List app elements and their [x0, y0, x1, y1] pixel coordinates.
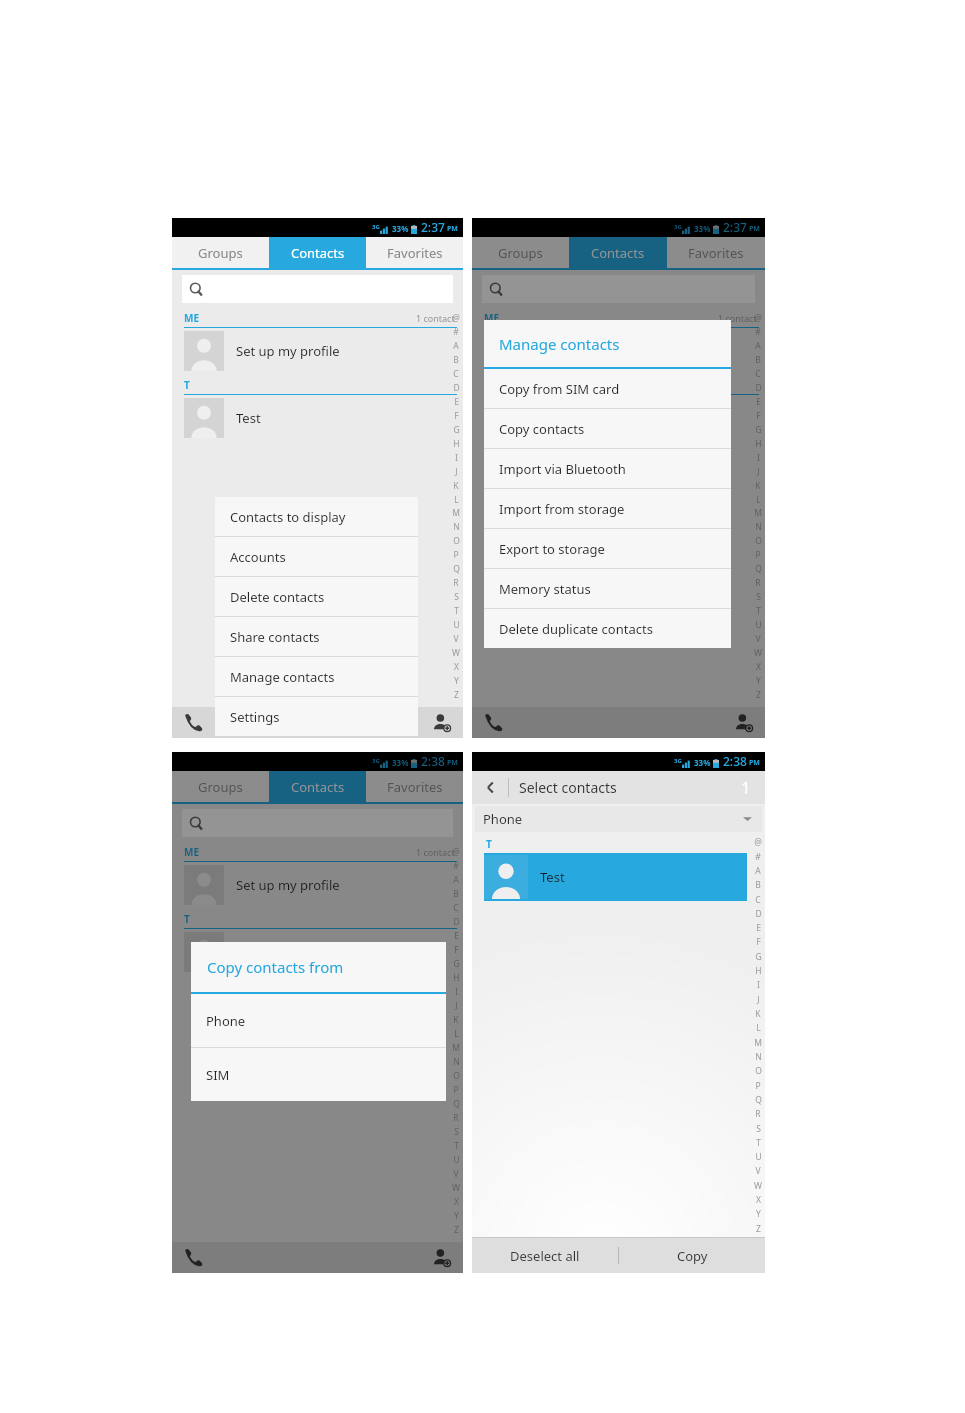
- button[interactable]: Copy from SIM card: [484, 369, 731, 408]
- staticText: Copy contacts from: [207, 957, 344, 977]
- button[interactable]: [482, 275, 755, 303]
- button[interactable]: Manage contacts: [215, 657, 418, 696]
- button[interactable]: Favorites: [366, 771, 463, 802]
- button[interactable]: Deselect all: [472, 1238, 618, 1273]
- staticText: C: [453, 368, 459, 380]
- button[interactable]: Test: [184, 395, 463, 440]
- staticText: U: [755, 619, 762, 631]
- staticText: F: [454, 944, 459, 956]
- staticText: Z: [454, 1224, 459, 1236]
- button[interactable]: Test: [484, 395, 765, 440]
- button[interactable]: Export to storage: [484, 529, 731, 568]
- staticText: I: [455, 986, 458, 998]
- button[interactable]: Groups: [172, 237, 269, 268]
- staticText: Set up my profile: [236, 342, 340, 360]
- staticText: 2:37: [421, 219, 445, 235]
- button[interactable]: [182, 275, 453, 303]
- staticText: Share contacts: [230, 628, 320, 646]
- button[interactable]: Set up my profile: [184, 328, 463, 373]
- button[interactable]: Add contact: [317, 1242, 463, 1273]
- staticText: 1 contact: [416, 846, 455, 858]
- staticText: A: [755, 865, 761, 877]
- button[interactable]: [182, 809, 453, 837]
- button[interactable]: Favorites: [667, 237, 765, 268]
- staticText: H: [453, 972, 460, 984]
- staticText: S: [756, 591, 761, 603]
- staticText: 33%: [694, 223, 711, 234]
- staticText: X: [454, 661, 459, 673]
- button[interactable]: Groups: [472, 237, 569, 268]
- button[interactable]: Dialer: [172, 1242, 317, 1273]
- staticText: Y: [454, 675, 459, 687]
- staticText: L: [756, 1022, 761, 1034]
- staticText: I: [757, 979, 760, 991]
- staticText: #: [755, 851, 761, 863]
- button[interactable]: Settings: [215, 697, 418, 736]
- button[interactable]: Memory status: [484, 569, 731, 608]
- staticText: F: [454, 410, 459, 422]
- staticText: 3G: [372, 757, 380, 765]
- staticText: L: [454, 494, 459, 506]
- button[interactable]: Share contacts: [215, 617, 418, 656]
- staticText: V: [755, 1165, 761, 1177]
- button[interactable]: Dialer: [472, 707, 618, 738]
- button[interactable]: Add contact: [618, 707, 765, 738]
- staticText: Copy: [677, 1247, 708, 1265]
- button[interactable]: Set up my profile: [184, 862, 463, 907]
- staticText: D: [453, 382, 460, 394]
- button[interactable]: Contacts to display: [215, 497, 418, 536]
- button[interactable]: Import from storage: [484, 489, 731, 528]
- button[interactable]: Delete duplicate contacts: [484, 609, 731, 648]
- staticText: Manage contacts: [230, 668, 335, 686]
- staticText: Test: [236, 409, 261, 427]
- button[interactable]: Contacts: [269, 237, 366, 268]
- staticText: K: [453, 480, 459, 492]
- button[interactable]: Test: [184, 929, 463, 974]
- staticText: 33%: [392, 757, 409, 768]
- staticText: P: [453, 1084, 459, 1096]
- staticText: ME: [184, 845, 200, 859]
- button[interactable]: Contacts: [569, 237, 667, 268]
- button[interactable]: Set up my profile: [484, 328, 765, 373]
- staticText: 2:37: [723, 219, 747, 235]
- staticText: Contacts: [291, 244, 345, 262]
- button[interactable]: Contacts: [269, 771, 366, 802]
- staticText: G: [453, 424, 460, 436]
- staticText: M: [754, 1037, 762, 1049]
- staticText: PM: [447, 224, 458, 234]
- staticText: H: [755, 438, 762, 450]
- staticText: F: [756, 410, 761, 422]
- staticText: Contacts to display: [230, 508, 346, 526]
- staticText: #: [755, 326, 761, 338]
- button[interactable]: Groups: [172, 771, 269, 802]
- button[interactable]: Phone: [475, 806, 762, 832]
- staticText: Y: [454, 1210, 459, 1222]
- staticText: K: [755, 480, 761, 492]
- button[interactable]: Accounts: [215, 537, 418, 576]
- staticText: Test: [536, 409, 561, 427]
- staticText: V: [453, 1168, 459, 1180]
- button[interactable]: Phone: [191, 994, 446, 1047]
- button[interactable]: Favorites: [366, 237, 463, 268]
- button[interactable]: Back: [472, 771, 508, 804]
- button[interactable]: Add contact: [317, 707, 463, 738]
- staticText: Set up my profile: [536, 342, 640, 360]
- staticText: A: [453, 874, 459, 886]
- staticText: Phone: [206, 1012, 246, 1030]
- staticText: O: [755, 535, 762, 547]
- button[interactable]: Import via Bluetooth: [484, 449, 731, 488]
- button[interactable]: Test: [484, 853, 747, 901]
- staticText: Deselect all: [510, 1247, 580, 1265]
- staticText: A: [755, 340, 761, 352]
- staticText: Delete contacts: [230, 588, 325, 606]
- staticText: Export to storage: [499, 540, 605, 558]
- staticText: Favorites: [688, 244, 744, 262]
- button[interactable]: Copy contacts: [484, 409, 731, 448]
- button[interactable]: SIM: [191, 1048, 446, 1101]
- staticText: J: [757, 994, 760, 1006]
- button[interactable]: Dialer: [172, 707, 317, 738]
- staticText: Groups: [498, 244, 543, 262]
- button[interactable]: Copy: [619, 1238, 765, 1273]
- button[interactable]: Delete contacts: [215, 577, 418, 616]
